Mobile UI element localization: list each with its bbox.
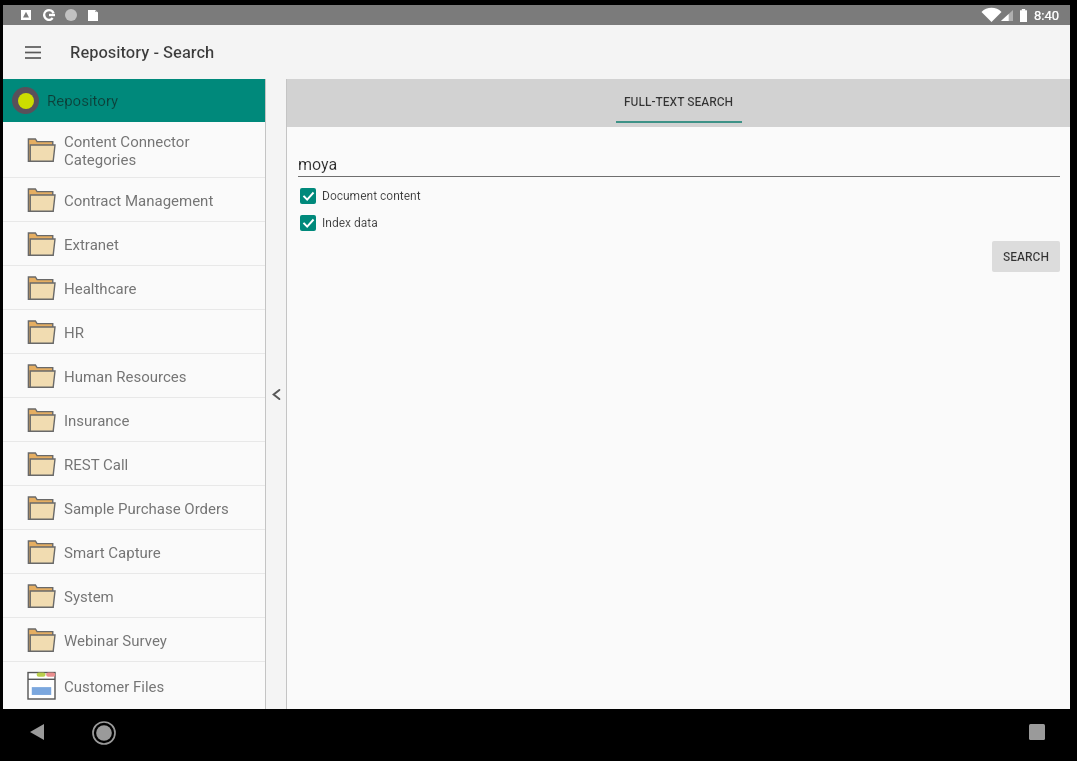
staticText: Human Resources — [64, 368, 187, 386]
button[interactable]: HR — [3, 310, 265, 353]
button[interactable]: Contract Management — [3, 178, 265, 221]
button[interactable]: Collapse panel — [270, 388, 283, 401]
staticText: Sample Purchase Orders — [64, 500, 229, 518]
button[interactable]: Healthcare — [3, 266, 265, 309]
staticText: moya — [298, 155, 338, 174]
staticText: SEARCH — [1003, 250, 1049, 264]
button[interactable]: Webinar Survey — [3, 618, 265, 661]
button[interactable]: Recent apps — [1022, 724, 1052, 754]
button[interactable]: Human Resources — [3, 354, 265, 397]
staticText: Index data — [322, 216, 378, 230]
staticText: System — [64, 588, 114, 606]
button[interactable]: Open navigation drawer — [13, 33, 52, 72]
button[interactable]: Repository — [3, 79, 265, 122]
button[interactable]: Home — [92, 721, 116, 745]
staticText: REST Call — [64, 456, 129, 474]
button[interactable]: System — [3, 574, 265, 617]
staticText: Repository - Search — [70, 43, 215, 62]
button[interactable]: Content Connector Categories — [3, 122, 265, 177]
button[interactable]: REST Call — [3, 442, 265, 485]
staticText: Repository — [47, 92, 119, 110]
button[interactable]: Extranet — [3, 222, 265, 265]
staticText: FULL-TEXT SEARCH — [624, 95, 734, 109]
button[interactable]: Document content — [300, 188, 421, 204]
staticText: Customer Files — [64, 678, 165, 696]
button[interactable]: Index data — [300, 215, 378, 231]
staticText: Content Connector Categories — [64, 133, 190, 169]
button[interactable]: SEARCH — [992, 241, 1060, 272]
staticText: 8:40 — [1034, 8, 1060, 23]
staticText: Healthcare — [64, 280, 137, 298]
button[interactable]: Insurance — [3, 398, 265, 441]
staticText: Insurance — [64, 412, 130, 430]
staticText: Extranet — [64, 236, 119, 254]
staticText: Contract Management — [64, 192, 214, 210]
button[interactable]: FULL-TEXT SEARCH — [616, 79, 742, 127]
button[interactable]: Smart Capture — [3, 530, 265, 573]
staticText: Smart Capture — [64, 544, 161, 562]
button[interactable]: Customer Files — [3, 662, 265, 709]
button[interactable]: Back — [21, 716, 53, 748]
staticText: Document content — [322, 189, 421, 203]
staticText: Webinar Survey — [64, 632, 167, 650]
button[interactable]: Sample Purchase Orders — [3, 486, 265, 529]
staticText: HR — [64, 324, 84, 342]
